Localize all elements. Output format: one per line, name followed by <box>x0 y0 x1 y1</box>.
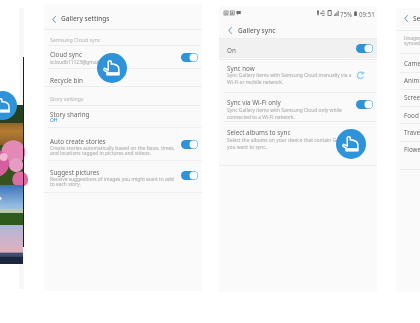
button[interactable] <box>44 4 202 29</box>
staticText: Receive suggestions of images you might … <box>50 176 176 187</box>
button[interactable] <box>396 141 420 158</box>
button[interactable]: Toggle <box>181 171 198 180</box>
staticText: 09:51 <box>359 10 375 18</box>
staticText: Story settings <box>50 95 84 102</box>
button[interactable]: Toggle <box>356 100 373 109</box>
staticText: Off <box>50 117 58 124</box>
button[interactable]: Tap here <box>0 91 17 120</box>
button[interactable] <box>396 72 420 89</box>
button[interactable] <box>396 54 420 71</box>
staticText: Story sharing <box>50 110 90 119</box>
staticText: Sync now <box>227 64 255 73</box>
button[interactable]: Tap here <box>336 129 366 159</box>
staticText: Gallery settings <box>61 14 110 23</box>
button[interactable]: Tap here <box>97 53 127 83</box>
staticText: scloudb11123@gmail.com <box>50 59 111 66</box>
staticText: Select the albums on your device that co… <box>227 137 369 151</box>
button[interactable] <box>44 69 202 86</box>
staticText: 75% <box>340 10 353 18</box>
staticText: Food <box>404 111 419 120</box>
staticText: Select albums to sync <box>227 128 291 137</box>
button[interactable] <box>219 93 377 125</box>
button[interactable] <box>396 106 420 123</box>
staticText: Select albums <box>413 14 420 23</box>
staticText: Screenshots <box>404 93 420 102</box>
button[interactable] <box>44 161 202 188</box>
button[interactable]: Toggle <box>181 140 198 149</box>
staticText: Samsung Cloud sync <box>50 36 101 43</box>
button[interactable]: Navigate up <box>48 13 60 25</box>
staticText: Images and videos in the albums you sele… <box>404 35 420 47</box>
button[interactable] <box>219 39 377 58</box>
staticText: Camera <box>404 59 420 68</box>
staticText: Sync Gallery items with Samsung Cloud ma… <box>227 72 358 86</box>
staticText: Suggest pictures <box>50 168 100 177</box>
button[interactable]: Sync now <box>354 69 366 81</box>
button[interactable]: Toggle <box>356 44 373 53</box>
button[interactable] <box>219 122 377 154</box>
button[interactable]: Navigate up <box>224 24 236 36</box>
staticText: Recycle bin <box>50 76 83 85</box>
staticText: Travel <box>404 128 420 137</box>
button[interactable] <box>396 8 420 30</box>
staticText: Animals <box>404 76 420 85</box>
button[interactable] <box>396 123 420 140</box>
button[interactable]: Toggle <box>181 53 198 62</box>
staticText: Gallery sync <box>238 26 276 35</box>
button[interactable] <box>44 128 202 155</box>
staticText: Flowers <box>404 145 420 154</box>
staticText: On <box>227 46 236 55</box>
staticText: Create stories automatically based on th… <box>50 145 176 156</box>
staticText: Cloud sync <box>50 50 82 59</box>
button[interactable] <box>44 106 202 125</box>
staticText: Sync Gallery items with Samsung Cloud on… <box>227 107 351 121</box>
staticText: Sync via Wi-Fi only <box>227 98 281 107</box>
staticText: Auto create stories <box>50 137 106 146</box>
button[interactable] <box>396 89 420 106</box>
button[interactable] <box>44 46 202 67</box>
button[interactable] <box>219 60 377 92</box>
button[interactable]: Navigate up <box>400 12 412 24</box>
button[interactable] <box>219 21 377 43</box>
